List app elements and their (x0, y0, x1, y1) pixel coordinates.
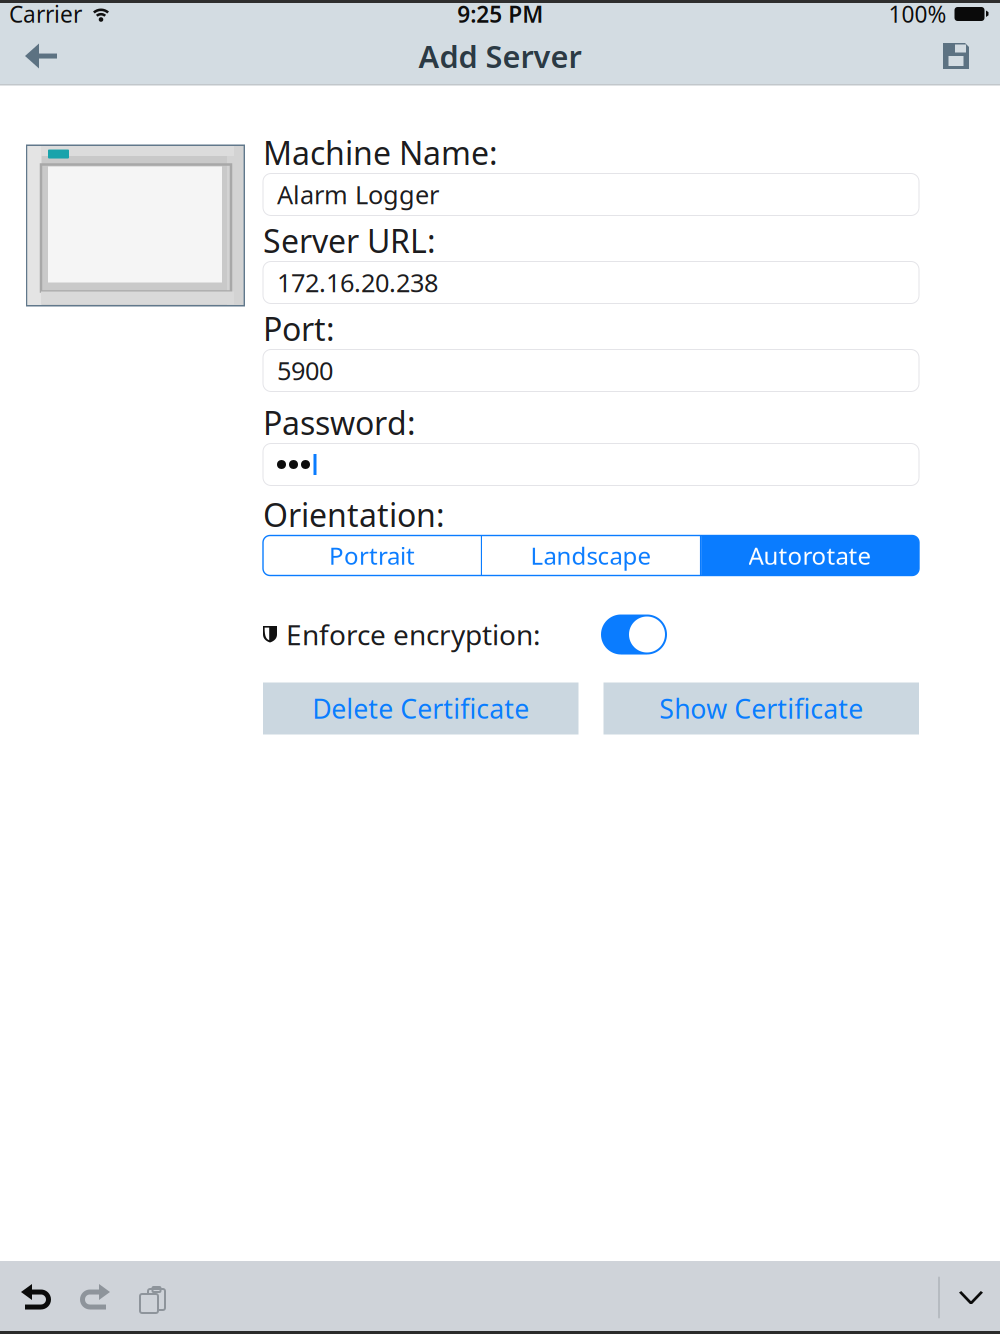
button[interactable]: Portrait (263, 535, 481, 575)
button[interactable]: 5900 (263, 349, 919, 391)
staticText: Port: (263, 307, 335, 350)
button[interactable]: Hide keyboard (947, 1273, 995, 1322)
staticText: Alarm Logger (277, 178, 439, 211)
staticText: 100% (888, 0, 946, 29)
staticText: Server URL: (263, 219, 436, 262)
button[interactable]: Enforce encryption (601, 614, 667, 654)
staticText: 172.16.20.238 (277, 266, 438, 299)
staticText: 9:25 PM (457, 0, 543, 29)
staticText: Enforce encryption: (286, 616, 541, 653)
button[interactable]: Redo (67, 1271, 123, 1323)
button[interactable]: Save (919, 28, 1000, 84)
button[interactable]: Alarm Logger (263, 173, 919, 215)
staticText: 5900 (277, 354, 333, 387)
staticText: Orientation: (263, 493, 445, 536)
staticText: Carrier (9, 0, 82, 29)
staticText: Machine Name: (263, 131, 498, 174)
staticText: Landscape (530, 540, 651, 571)
button[interactable]: Paste (123, 1271, 175, 1323)
button[interactable]: 172.16.20.238 (263, 261, 919, 303)
button[interactable]: Delete Certificate (263, 682, 578, 734)
button[interactable]: Show Certificate (603, 682, 919, 734)
button[interactable]: Password field (263, 443, 919, 485)
button[interactable]: Undo (8, 1271, 64, 1323)
button[interactable]: Back (0, 28, 82, 84)
staticText: Show Certificate (659, 691, 863, 726)
button[interactable]: Autorotate (701, 535, 919, 575)
staticText: Password: (263, 401, 416, 444)
button[interactable]: Landscape (482, 535, 700, 575)
staticText: Add Server (418, 36, 581, 76)
staticText: Autorotate (749, 540, 872, 571)
staticText: Delete Certificate (312, 691, 529, 726)
staticText: Portrait (329, 540, 415, 571)
